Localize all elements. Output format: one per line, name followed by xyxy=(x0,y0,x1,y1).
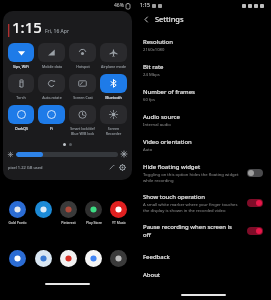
staticText: Screen Cast xyxy=(73,95,93,100)
button[interactable]: App xyxy=(81,250,106,267)
button[interactable]: Edit tiles xyxy=(107,162,117,172)
button[interactable]: Fi xyxy=(38,105,65,131)
button[interactable]: App xyxy=(106,250,131,267)
button[interactable]: Show touch operation xyxy=(247,199,263,207)
staticText: Toggling on this option hides the floati… xyxy=(143,172,241,183)
staticText: Mobile data xyxy=(42,64,62,69)
button[interactable]: Mobile data xyxy=(38,43,65,69)
staticText: Hotspot xyxy=(76,64,90,69)
button[interactable]: Bluetooth xyxy=(100,74,127,100)
button[interactable]: DarkQS xyxy=(8,105,34,131)
staticText: Resolution xyxy=(143,38,173,46)
staticText: Auto xyxy=(143,147,153,153)
button[interactable]: Screen Recorder xyxy=(100,105,127,136)
staticText: 2160x1080 xyxy=(143,47,165,53)
button[interactable]: App xyxy=(30,250,56,267)
staticText: About xyxy=(143,271,161,279)
staticText: Settings xyxy=(155,14,184,24)
button[interactable]: App xyxy=(30,201,56,218)
staticText: 1:15 xyxy=(140,2,150,9)
button[interactable]: Bit rate xyxy=(135,58,271,83)
staticText: 1:15 xyxy=(12,17,42,37)
button[interactable]: Airplane mode xyxy=(100,43,127,69)
staticText: Video orientation xyxy=(143,138,192,146)
button[interactable]: Pinterest xyxy=(56,201,81,225)
staticText: Hide floating widget xyxy=(143,163,201,171)
button[interactable]: About xyxy=(135,266,271,284)
staticText: Pause recording when screen is off xyxy=(143,223,241,239)
button[interactable]: Hide floating widget xyxy=(247,169,263,177)
button[interactable]: Sips, WiFi xyxy=(8,43,34,69)
staticText: Fri, 16 Apr xyxy=(45,28,69,35)
button[interactable]: Feedback xyxy=(135,248,271,266)
button[interactable]: Audio source xyxy=(135,108,271,133)
button[interactable]: Show touch operation xyxy=(135,188,271,218)
staticText: Smart lock/def Blue W/B lock xyxy=(70,126,95,136)
button[interactable]: App xyxy=(4,250,30,267)
staticText: Screen Recorder xyxy=(100,126,127,136)
button[interactable]: Video orientation xyxy=(135,133,271,158)
button[interactable]: Hotspot xyxy=(69,43,96,69)
staticText: Sips, WiFi xyxy=(13,64,29,69)
staticText: Bit rate xyxy=(143,63,164,71)
staticText: Fi xyxy=(50,126,53,131)
staticText: pixel 1.22 GB used xyxy=(8,165,43,170)
button[interactable]: Play Store xyxy=(81,201,106,225)
button[interactable]: Resolution xyxy=(135,33,271,58)
button[interactable]: App xyxy=(56,250,81,267)
button[interactable]: Hide floating widget xyxy=(135,158,271,188)
staticText: 46% xyxy=(114,2,124,9)
button[interactable]: Smart lock/def Blue W/B lock xyxy=(69,105,96,136)
button[interactable]: Screen Cast xyxy=(69,74,96,100)
staticText: Number of frames xyxy=(143,88,195,96)
staticText: YT Music xyxy=(112,220,126,225)
staticText: 24 Mbps xyxy=(143,72,160,78)
button[interactable]: Number of frames xyxy=(135,83,271,108)
staticText: Play Store xyxy=(86,220,102,225)
staticText: Airplane mode xyxy=(101,64,126,69)
staticText: 60 fps xyxy=(143,97,155,103)
staticText: Bluetooth xyxy=(105,95,122,100)
button[interactable]: Back xyxy=(141,14,151,24)
staticText: Show touch operation xyxy=(143,193,205,201)
button[interactable]: Torch xyxy=(8,74,34,100)
button[interactable]: Pause recording when screen is off xyxy=(135,218,271,244)
staticText: DarkQS xyxy=(15,126,28,131)
button[interactable]: Pause recording when screen is off xyxy=(247,227,263,235)
staticText: Internal audio xyxy=(143,122,171,128)
button[interactable]: YT Music xyxy=(106,201,131,225)
button[interactable]: Gold Poetic xyxy=(4,201,30,225)
staticText: Gold Poetic xyxy=(8,220,27,225)
staticText: Audio source xyxy=(143,113,180,121)
staticText: A small white marker where your finger t… xyxy=(143,202,241,213)
button[interactable]: Auto-rotate xyxy=(38,74,65,100)
staticText: Pinterest xyxy=(61,220,76,225)
button[interactable] xyxy=(16,152,118,157)
staticText: Torch xyxy=(16,95,26,100)
button[interactable]: Settings xyxy=(117,162,127,172)
staticText: Feedback xyxy=(143,253,170,261)
staticText: Auto-rotate xyxy=(42,95,62,100)
